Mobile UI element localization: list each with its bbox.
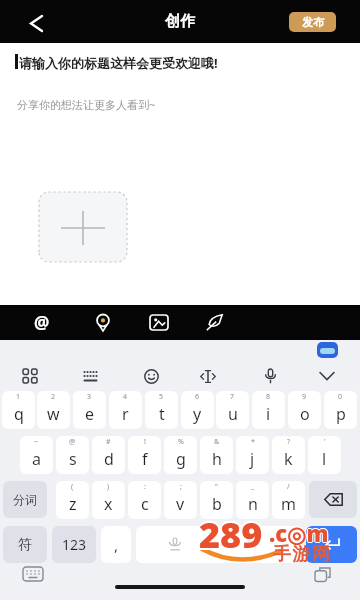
staticText: 289 xyxy=(201,509,265,558)
staticText: ; xyxy=(180,482,182,492)
staticText: # xyxy=(106,437,111,447)
button[interactable] xyxy=(196,364,220,388)
button[interactable] xyxy=(306,526,357,563)
button[interactable]: 7 xyxy=(216,391,249,429)
button[interactable]: 发布 xyxy=(289,12,336,32)
button[interactable]: @ xyxy=(56,436,89,474)
staticText: 289 xyxy=(199,512,263,561)
button[interactable]: 5 xyxy=(145,391,178,429)
button[interactable]: ' xyxy=(308,436,341,474)
staticText: j xyxy=(250,448,255,470)
button[interactable] xyxy=(136,526,301,563)
button[interactable] xyxy=(139,364,163,388)
button[interactable]: ( xyxy=(56,481,89,519)
staticText: b xyxy=(212,493,222,515)
staticText: * xyxy=(251,437,255,447)
button[interactable] xyxy=(147,305,171,340)
staticText: n xyxy=(248,493,258,515)
staticText: % xyxy=(178,437,184,447)
button[interactable]: 0 xyxy=(324,391,357,429)
button[interactable] xyxy=(202,305,226,340)
staticText: 6 xyxy=(195,392,200,402)
staticText: 8 xyxy=(266,392,271,402)
button[interactable] xyxy=(91,305,115,340)
button[interactable] xyxy=(20,564,46,584)
staticText: v xyxy=(176,493,185,515)
button[interactable]: & xyxy=(200,436,233,474)
staticText: @ xyxy=(34,311,50,334)
staticText: .c◎m xyxy=(270,518,330,548)
button[interactable]: 9 xyxy=(288,391,321,429)
staticText: g xyxy=(176,448,186,470)
button[interactable]: ! xyxy=(128,436,161,474)
staticText: , xyxy=(114,535,119,555)
staticText: ! xyxy=(144,437,146,447)
button[interactable] xyxy=(315,364,339,388)
button[interactable]: 4 xyxy=(109,391,142,429)
button[interactable] xyxy=(18,364,42,388)
button[interactable] xyxy=(78,364,102,388)
button[interactable] xyxy=(258,364,282,388)
staticText: ( xyxy=(71,482,74,492)
button[interactable]: 8 xyxy=(252,391,285,429)
button[interactable]: ; xyxy=(164,481,197,519)
button[interactable]: 2 xyxy=(37,391,70,429)
staticText: 手游网 xyxy=(273,543,332,566)
staticText: ? xyxy=(287,437,291,447)
button[interactable]: # xyxy=(92,436,125,474)
button[interactable]: _ xyxy=(236,481,269,519)
button[interactable]: ) xyxy=(92,481,125,519)
button[interactable]: 1 xyxy=(2,391,35,429)
staticText: 9 xyxy=(302,392,307,402)
button[interactable]: 分词 xyxy=(3,481,47,518)
button[interactable]: " xyxy=(200,481,233,519)
button[interactable] xyxy=(20,8,52,38)
button[interactable]: 123 xyxy=(52,526,96,563)
button[interactable] xyxy=(39,192,127,262)
staticText: c xyxy=(141,493,149,515)
button[interactable]: , xyxy=(101,526,131,563)
staticText: ) xyxy=(107,482,110,492)
staticText: " xyxy=(215,482,218,492)
button[interactable]: * xyxy=(236,436,269,474)
staticText: 289 xyxy=(197,510,261,559)
button[interactable]: 6 xyxy=(181,391,214,429)
staticText: l xyxy=(322,448,327,470)
staticText: o xyxy=(300,403,310,425)
staticText: d xyxy=(104,448,114,470)
staticText: 分享你的想法让更多人看到~ xyxy=(17,97,156,112)
staticText: u xyxy=(228,403,238,425)
staticText: e xyxy=(85,403,95,425)
staticText: p xyxy=(336,403,346,425)
staticText: 7 xyxy=(230,392,235,402)
button[interactable]: ? xyxy=(272,436,305,474)
staticText: 创作 xyxy=(165,12,195,31)
staticText: q xyxy=(14,403,24,425)
staticText: y xyxy=(193,403,202,425)
staticText: _ xyxy=(251,482,255,492)
staticText: i xyxy=(266,403,271,425)
staticText: 123 xyxy=(62,535,87,554)
staticText: 0 xyxy=(338,392,343,402)
button[interactable]: 符 xyxy=(3,526,47,563)
staticText: 289 xyxy=(199,510,263,559)
staticText: 4 xyxy=(123,392,128,402)
staticText: 289 xyxy=(198,509,262,558)
button[interactable]: : xyxy=(128,481,161,519)
button[interactable]: 3 xyxy=(73,391,106,429)
button[interactable]: @ xyxy=(30,305,54,340)
staticText: t xyxy=(159,403,165,425)
button[interactable] xyxy=(310,564,336,584)
button[interactable]: % xyxy=(164,436,197,474)
staticText: z xyxy=(69,493,77,515)
staticText: .c◎m xyxy=(269,517,329,547)
staticText: : xyxy=(144,482,146,492)
staticText: h xyxy=(212,448,222,470)
button[interactable]: ~ xyxy=(20,436,53,474)
staticText: 请输入你的标题这样会更受欢迎哦! xyxy=(19,54,218,72)
button[interactable] xyxy=(309,481,357,518)
button[interactable]: / xyxy=(272,481,305,519)
staticText: m xyxy=(281,493,296,515)
staticText: 289 xyxy=(201,512,265,561)
staticText: s xyxy=(69,448,77,470)
